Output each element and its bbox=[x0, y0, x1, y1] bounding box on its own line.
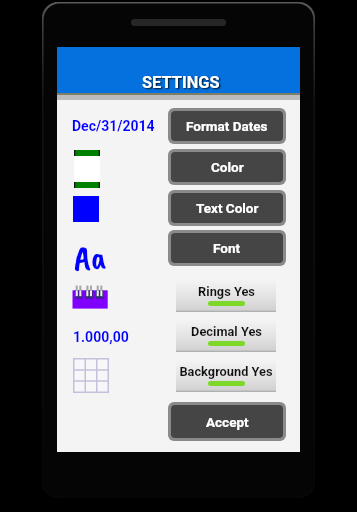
button[interactable]: Font bbox=[171, 233, 283, 263]
button[interactable]: Text Color bbox=[171, 193, 283, 223]
other: Grid preview bbox=[73, 358, 109, 393]
button[interactable]: 1.000,00 bbox=[73, 329, 129, 345]
button[interactable]: Rings Yes bbox=[176, 280, 276, 312]
staticText: Aa bbox=[74, 234, 107, 279]
staticText: Dec/31/2014 bbox=[72, 118, 155, 134]
staticText: Font bbox=[213, 240, 241, 256]
staticText: Format Dates bbox=[186, 118, 268, 134]
button[interactable]: Background Yes bbox=[176, 360, 276, 392]
button[interactable]: SETTINGS bbox=[57, 47, 300, 93]
button[interactable]: Decimal Yes bbox=[176, 320, 276, 352]
other: Rings preview bbox=[74, 150, 100, 188]
other: Calendar preview bbox=[72, 285, 110, 311]
staticText: Color bbox=[211, 159, 244, 175]
staticText: Text Color bbox=[196, 200, 259, 216]
staticText: Accept bbox=[206, 414, 249, 430]
other: Font preview bbox=[74, 234, 107, 279]
staticText: Decimal Yes bbox=[191, 324, 262, 339]
button[interactable]: Format Dates bbox=[171, 111, 283, 141]
staticText: Background Yes bbox=[179, 364, 273, 379]
staticText: 1.000,00 bbox=[73, 329, 129, 345]
button[interactable]: Accept bbox=[171, 405, 283, 438]
button[interactable]: Color bbox=[171, 152, 283, 182]
staticText: SETTINGS bbox=[142, 73, 220, 92]
staticText: Rings Yes bbox=[198, 284, 255, 299]
button[interactable]: Dec/31/2014 bbox=[72, 118, 155, 134]
